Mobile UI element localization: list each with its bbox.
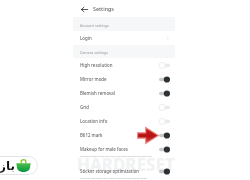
button[interactable]: Grid	[73, 100, 175, 114]
button[interactable]: Login	[73, 31, 175, 45]
staticText: Cosmetics applies to male faces too; it …	[80, 155, 152, 158]
button[interactable]: Back	[77, 1, 92, 17]
button[interactable]: B612 mark	[73, 128, 175, 142]
button[interactable]: Bazaar	[0, 156, 38, 175]
button[interactable]: Sticker storage optimization	[73, 164, 175, 180]
staticText: HARDRESET	[77, 153, 175, 176]
staticText: Sticker storage optimization	[80, 168, 159, 174]
staticText: Mirror mode	[80, 76, 159, 82]
staticText: بازار	[0, 159, 15, 173]
button[interactable]: Blemish removal	[73, 86, 175, 100]
staticText: Settings	[93, 5, 114, 12]
staticText: Grid	[80, 104, 159, 110]
staticText: Blemish removal	[80, 90, 159, 96]
staticText: Account settings	[80, 23, 109, 28]
staticText: Camera settings	[80, 50, 109, 55]
staticText: B612 mark	[80, 132, 159, 138]
staticText: Login	[80, 35, 166, 41]
button[interactable]: High resolution	[73, 58, 175, 72]
staticText: Location info	[80, 118, 159, 124]
button[interactable]: Location info	[73, 114, 175, 128]
staticText: High resolution	[80, 62, 159, 68]
button[interactable]: Mirror mode	[73, 72, 175, 86]
button[interactable]: Makeup for male faces	[73, 142, 175, 164]
staticText: Makeup for male faces	[80, 146, 159, 152]
staticText: The stickers that haven't been used for …	[80, 177, 147, 179]
